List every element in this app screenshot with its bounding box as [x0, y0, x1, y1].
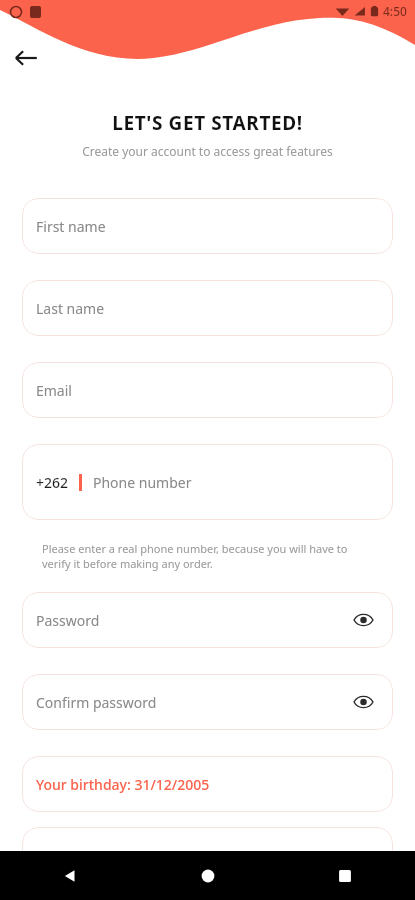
staticText: Please enter a real phone number, becaus… [42, 541, 372, 571]
button[interactable]: First name [22, 198, 393, 254]
staticText: 4:50 [383, 3, 407, 19]
staticText: Your birthday: 31/12/2005 [36, 775, 210, 794]
button[interactable]: Your birthday: 31/12/2005 [22, 756, 393, 812]
staticText: +262 [36, 473, 69, 492]
button[interactable]: Home [188, 856, 228, 896]
button[interactable]: Show password [349, 606, 377, 634]
button[interactable]: Last name [22, 280, 393, 336]
staticText: Create your account to access great feat… [82, 143, 333, 159]
staticText: First name [36, 217, 106, 236]
button[interactable]: Confirm password [22, 674, 393, 730]
button[interactable]: Email [22, 362, 393, 418]
button[interactable]: Back [6, 38, 46, 78]
staticText: LET'S GET STARTED! [112, 110, 303, 136]
button[interactable]: Password [22, 592, 393, 648]
staticText: Email [36, 381, 72, 400]
staticText: Phone number [93, 473, 192, 492]
button[interactable] [22, 827, 393, 883]
button[interactable]: Show password [349, 688, 377, 716]
staticText: Confirm password [36, 693, 157, 712]
staticText: Last name [36, 299, 105, 318]
button[interactable]: Recents [325, 856, 365, 896]
button[interactable]: +262 [22, 444, 393, 520]
button[interactable]: Back [50, 856, 90, 896]
staticText: Password [36, 611, 100, 630]
